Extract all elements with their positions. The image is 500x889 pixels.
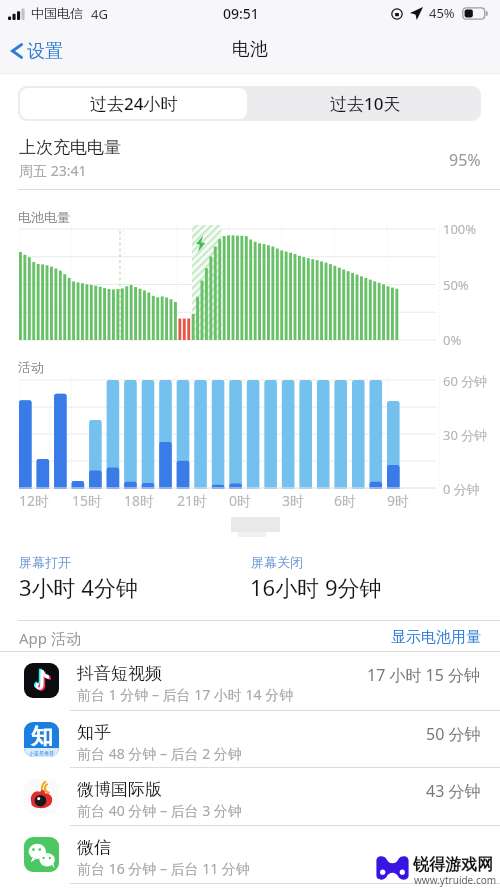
staticText: 中国电信 (31, 5, 83, 21)
staticText: 43 分钟 (426, 780, 481, 802)
button[interactable]: 过去10天 (252, 88, 479, 119)
staticText: 前台 16 分钟 – 后台 11 分钟 (77, 859, 250, 878)
staticText: 50 分钟 (426, 723, 481, 745)
staticText: 前台 48 分钟 – 后台 2 分钟 (77, 744, 242, 763)
staticText: 过去10天 (330, 92, 401, 115)
staticText: 锐得游戏网 (413, 855, 493, 875)
button[interactable]: 微信 (0, 826, 500, 884)
staticText: 知 (31, 723, 53, 751)
staticText: 周五 23:41 (19, 161, 87, 180)
staticText: 95% (449, 149, 481, 171)
staticText: 0 分钟 (443, 480, 480, 498)
staticText: 60 分钟 (443, 372, 488, 390)
staticText: 前台 40 分钟 – 后台 3 分钟 (77, 801, 242, 820)
staticText: 电池电量 (18, 209, 70, 225)
staticText: 45% (429, 4, 455, 22)
button[interactable]: 微博国际版 (0, 768, 500, 826)
staticText: 6时 (334, 491, 357, 510)
button[interactable]: 设置 (10, 38, 63, 64)
staticText: 抖音短视频 (77, 663, 162, 684)
staticText: 过去24小时 (90, 92, 178, 115)
staticText: 电池 (232, 38, 268, 61)
staticText: App 活动 (19, 628, 81, 648)
button[interactable]: 过去24小时 (20, 88, 247, 119)
staticText: 活动 (18, 359, 44, 375)
staticText: 12时 (19, 491, 50, 510)
staticText: 17 小时 15 分钟 (367, 664, 481, 686)
staticText: 知乎 (77, 722, 111, 743)
staticText: 微信 (77, 837, 111, 858)
staticText: 微博国际版 (77, 779, 162, 800)
staticText: 3小时 4分钟 (19, 572, 138, 602)
staticText: 前台 1 分钟 – 后台 17 小时 14 分钟 (77, 685, 294, 704)
staticText: 09:51 (223, 4, 259, 23)
staticText: 显示电池用量 (391, 628, 481, 647)
staticText: 屏幕关闭 (251, 554, 303, 570)
staticText: 15时 (72, 491, 103, 510)
button[interactable]: 抖音短视频 (0, 652, 500, 711)
staticText: www.ytruide.com (414, 873, 497, 887)
staticText: 3时 (282, 491, 305, 510)
staticText: 18时 (124, 491, 155, 510)
staticText: 0% (443, 331, 462, 349)
button[interactable]: 知 (0, 711, 500, 768)
staticText: 50% (443, 276, 469, 294)
staticText: 16小时 9分钟 (250, 572, 382, 602)
staticText: 30 分钟 (443, 426, 488, 444)
button[interactable]: 显示电池用量 (391, 628, 481, 647)
staticText: 21时 (177, 491, 208, 510)
staticText: 小蓝星推荐 (29, 750, 54, 756)
staticText: 100% (443, 220, 477, 238)
staticText: 9时 (387, 491, 410, 510)
staticText: 0时 (229, 491, 252, 510)
staticText: 上次充电电量 (19, 137, 121, 158)
staticText: 4G (91, 5, 108, 23)
staticText: 设置 (27, 40, 63, 63)
staticText: 屏幕打开 (19, 554, 71, 570)
